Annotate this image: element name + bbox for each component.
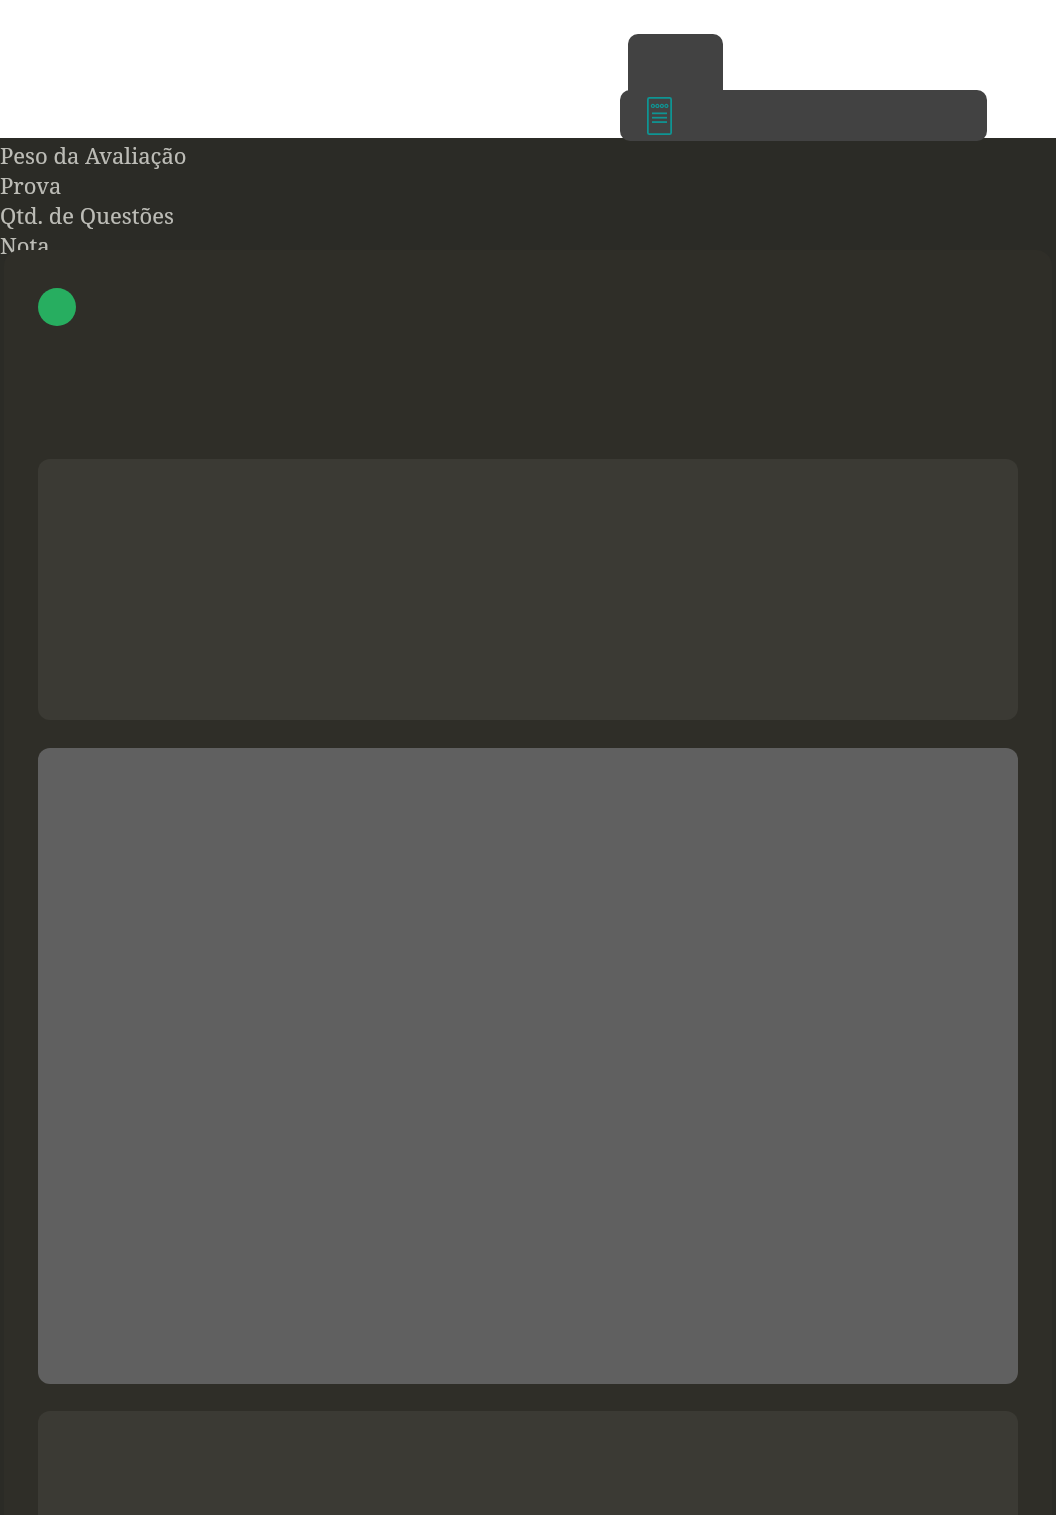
- button[interactable]: Status indicator: [38, 288, 76, 326]
- staticText: Qtd. de Questões: [0, 200, 174, 230]
- button[interactable]: Notes: [641, 93, 677, 138]
- button[interactable]: [620, 90, 987, 141]
- button[interactable]: Selected tab: [628, 34, 723, 91]
- staticText: Peso da Avaliação: [0, 140, 187, 170]
- staticText: Nota: [0, 230, 50, 260]
- staticText: Prova: [0, 170, 62, 200]
